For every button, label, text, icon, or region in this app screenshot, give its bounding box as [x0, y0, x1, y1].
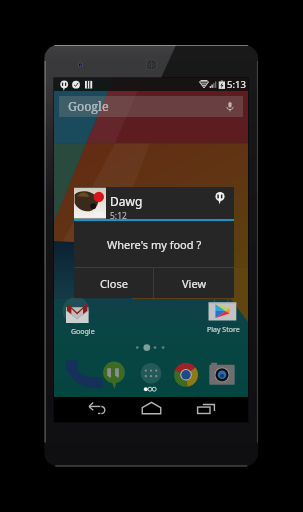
button[interactable]: Close: [74, 268, 153, 298]
button[interactable]: Play Store: [204, 296, 240, 334]
other: Voice search: [225, 100, 235, 114]
staticText: Google: [71, 327, 95, 337]
button[interactable]: Camera: [207, 359, 237, 389]
button[interactable]: View: [154, 268, 234, 298]
button[interactable]: Home: [141, 401, 162, 417]
staticText: 5:12: [110, 210, 127, 222]
button[interactable]: Google: [59, 96, 243, 117]
button[interactable]: Back: [88, 401, 108, 417]
button[interactable]: Chrome: [171, 359, 201, 389]
button[interactable]: Hangouts: [99, 359, 129, 389]
staticText: Google: [68, 98, 109, 115]
staticText: Dawg: [110, 193, 143, 209]
staticText: Close: [100, 276, 128, 291]
button[interactable]: All apps: [136, 359, 166, 389]
staticText: Where's my food ?: [107, 237, 202, 252]
button[interactable]: Recent apps: [196, 401, 216, 417]
staticText: Play Store: [207, 325, 240, 335]
button[interactable]: Google: [62, 298, 94, 336]
staticText: View: [182, 276, 207, 291]
button[interactable]: Phone: [66, 359, 96, 389]
staticText: 5:13: [227, 78, 246, 91]
